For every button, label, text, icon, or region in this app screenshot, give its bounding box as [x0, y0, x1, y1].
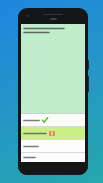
button[interactable] — [21, 24, 85, 113]
button[interactable]: Correct answer — [21, 114, 85, 126]
other: Correct answer — [42, 117, 48, 123]
button[interactable]: Selected answer — [21, 127, 85, 139]
button[interactable] — [21, 153, 85, 162]
button[interactable] — [21, 140, 85, 152]
other: Selected answer — [49, 131, 55, 136]
